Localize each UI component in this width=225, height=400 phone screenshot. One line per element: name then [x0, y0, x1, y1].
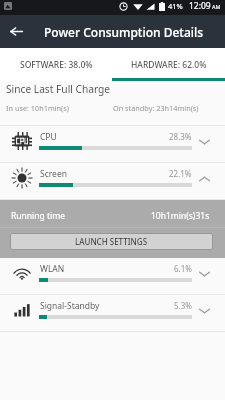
button[interactable]: WLAN [0, 258, 225, 295]
staticText: WLAN [40, 263, 65, 275]
staticText: SOFTWARE: 38.0% [20, 59, 93, 71]
staticText: 6.1% [174, 263, 192, 274]
button[interactable]: CPU [0, 126, 225, 163]
staticText: 22.1% [169, 168, 192, 179]
staticText: LAUNCH SETTINGS [75, 236, 148, 247]
staticText: Screen [40, 168, 67, 180]
staticText: Since Last Full Charge [6, 82, 111, 96]
button[interactable]: SOFTWARE: 38.0% [0, 48, 112, 78]
staticText: AM [212, 3, 221, 10]
staticText: 10h1min(s)31s [151, 210, 210, 222]
staticText: 12:09 [189, 0, 211, 12]
staticText: 41% [168, 1, 183, 11]
staticText: Running time [11, 210, 65, 222]
button[interactable]: Back [0, 15, 33, 48]
button[interactable]: HARDWARE: 62.0% [112, 48, 225, 78]
staticText: In use: 10h1min(s) [6, 103, 69, 113]
staticText: HARDWARE: 62.0% [131, 59, 207, 71]
staticText: CPU [40, 131, 57, 143]
button[interactable]: Signal-Standby [0, 295, 225, 332]
button[interactable]: Screen [0, 163, 225, 200]
staticText: Signal-Standby [40, 300, 100, 312]
button[interactable]: LAUNCH SETTINGS [10, 233, 213, 250]
staticText: 28.3% [169, 131, 192, 142]
staticText: On standby: 23h14min(s) [113, 103, 199, 113]
staticText: 5.3% [174, 300, 192, 311]
staticText: Power Consumption Details [44, 24, 204, 40]
